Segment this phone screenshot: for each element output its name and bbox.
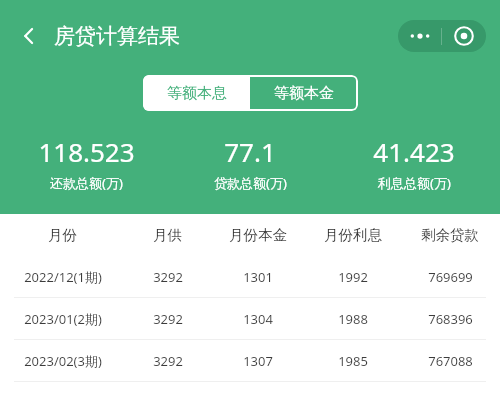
- staticText: 1304: [243, 310, 273, 328]
- staticText: 768396: [428, 310, 473, 328]
- staticText: 77.1: [224, 134, 276, 169]
- staticText: 3292: [153, 310, 183, 328]
- staticText: 41.423: [373, 134, 455, 169]
- button[interactable]: 等额本息: [143, 75, 250, 111]
- staticText: 2023/01(2期): [24, 310, 102, 328]
- button[interactable]: 2023/02(3期): [0, 340, 500, 381]
- staticText: 月供: [153, 226, 182, 244]
- button[interactable]: More options: [398, 20, 441, 52]
- staticText: 1301: [243, 268, 273, 286]
- staticText: 2022/12(1期): [24, 268, 102, 286]
- button[interactable]: 77.1: [168, 134, 332, 192]
- staticText: 1992: [338, 268, 368, 286]
- staticText: 118.523: [38, 134, 135, 169]
- button[interactable]: 41.423: [332, 134, 496, 192]
- staticText: 3292: [153, 352, 183, 370]
- staticText: 2023/02(3期): [24, 352, 102, 370]
- staticText: 1307: [243, 352, 273, 370]
- staticText: 房贷计算结果: [54, 23, 180, 49]
- button[interactable]: Back: [8, 15, 50, 57]
- staticText: 767088: [428, 352, 473, 370]
- staticText: 等额本息: [167, 84, 227, 103]
- staticText: 还款总额(万): [50, 174, 123, 192]
- staticText: 月份: [48, 226, 77, 244]
- button[interactable]: 2023/01(2期): [0, 298, 500, 339]
- staticText: 剩余贷款: [421, 226, 479, 244]
- staticText: 1988: [338, 310, 368, 328]
- staticText: 3292: [153, 268, 183, 286]
- staticText: 贷款总额(万): [214, 174, 287, 192]
- staticText: 1985: [338, 352, 368, 370]
- staticText: 月份利息: [324, 226, 382, 244]
- button[interactable]: 2022/12(1期): [0, 256, 500, 297]
- staticText: 等额本金: [274, 84, 334, 103]
- staticText: 利息总额(万): [378, 174, 451, 192]
- button[interactable]: 118.523: [4, 134, 168, 192]
- staticText: 769699: [428, 268, 473, 286]
- button[interactable]: 等额本金: [250, 75, 358, 111]
- staticText: 月份本金: [229, 226, 287, 244]
- button[interactable]: Close mini program: [442, 20, 486, 52]
